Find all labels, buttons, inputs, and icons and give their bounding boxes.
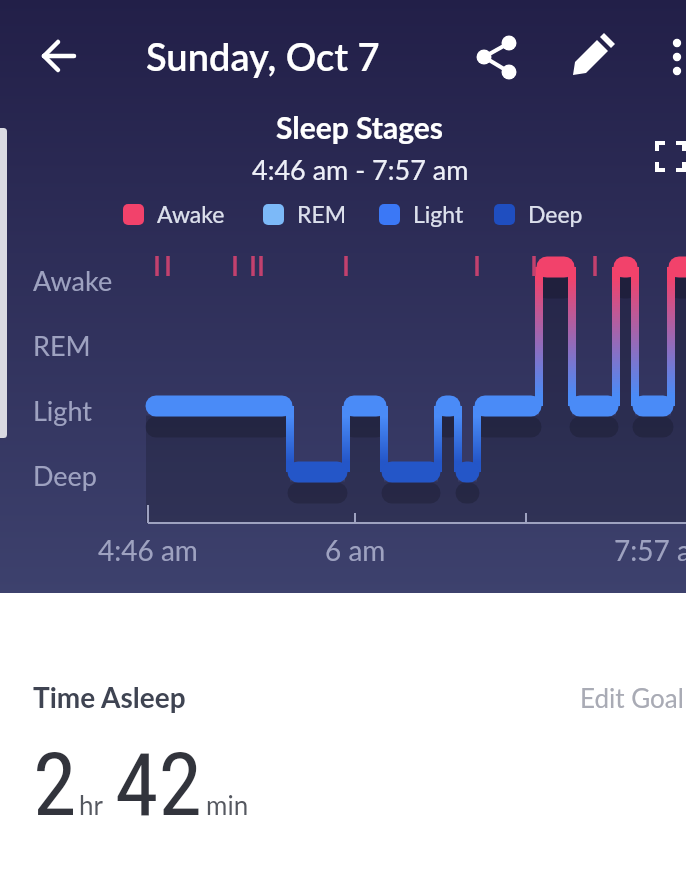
staticText: Awake xyxy=(33,264,113,296)
button[interactable]: Time Asleep xyxy=(33,680,186,714)
staticText: Awake xyxy=(157,200,225,228)
button[interactable]: Edit Goal xyxy=(580,682,684,713)
staticText: 2 xyxy=(33,733,77,836)
staticText: 7:57 am xyxy=(614,533,686,567)
staticText: hr xyxy=(79,789,103,820)
staticText: 6 am xyxy=(325,533,386,567)
staticText: min xyxy=(206,789,249,820)
button[interactable] xyxy=(648,135,686,179)
staticText: Sunday, Oct 7 xyxy=(146,33,380,79)
button[interactable] xyxy=(653,33,686,81)
button[interactable] xyxy=(566,33,614,81)
staticText: Deep xyxy=(528,200,583,228)
staticText: Sleep Stages xyxy=(276,109,444,145)
staticText: Light xyxy=(33,394,92,426)
button[interactable] xyxy=(33,32,81,80)
staticText: 42 xyxy=(115,733,202,836)
staticText: REM xyxy=(297,200,347,228)
staticText: 4:46 am xyxy=(98,533,198,567)
staticText: REM xyxy=(33,329,91,361)
staticText: Light xyxy=(413,200,464,228)
staticText: Deep xyxy=(33,459,97,491)
staticText: 4:46 am - 7:57 am xyxy=(252,153,469,185)
button[interactable] xyxy=(473,33,521,81)
